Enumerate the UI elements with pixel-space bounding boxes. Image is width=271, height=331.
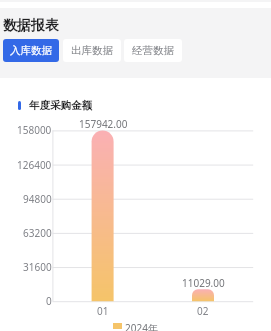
staticText: 94800 <box>23 192 52 206</box>
button[interactable]: 2024年 <box>110 317 161 331</box>
staticText: 02 <box>197 304 209 318</box>
staticText: 0 <box>46 294 52 308</box>
staticText: 126400 <box>17 158 52 172</box>
staticText: 158000 <box>17 123 52 137</box>
button[interactable]: 经营数据 <box>124 39 182 62</box>
staticText: 31600 <box>23 260 52 274</box>
staticText: 入库数据 <box>10 44 52 57</box>
staticText: 157942.00 <box>79 117 128 131</box>
staticText: 经营数据 <box>132 44 174 57</box>
staticText: 63200 <box>23 226 52 240</box>
button[interactable]: 出库数据 <box>63 39 121 62</box>
staticText: 11029.00 <box>182 276 225 290</box>
staticText: 01 <box>97 304 109 318</box>
button[interactable]: 入库数据 <box>3 39 59 62</box>
staticText: 年度采购金额 <box>29 99 92 112</box>
staticText: 2024年 <box>125 321 158 331</box>
staticText: 出库数据 <box>71 44 113 57</box>
staticText: 数据报表 <box>3 17 59 35</box>
other: 年度采购金额柱状图 <box>0 0 271 331</box>
